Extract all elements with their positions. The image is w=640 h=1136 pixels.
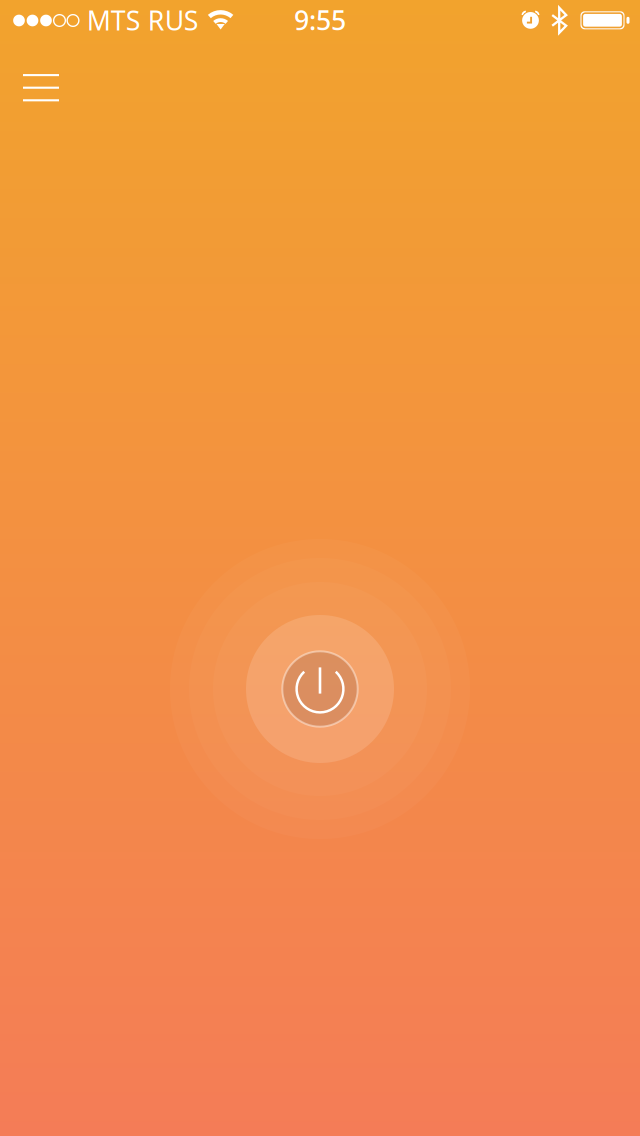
staticText: MTS RUS [87,2,199,38]
button[interactable]: Menu [0,40,90,135]
staticText: 9:55 [294,2,346,38]
button[interactable]: Power [170,539,470,839]
